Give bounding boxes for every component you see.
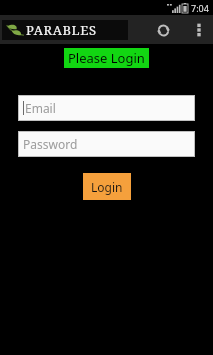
staticText: Please Login [68,49,145,67]
button[interactable]: Refresh [151,18,175,42]
staticText: Login [91,179,123,195]
button[interactable]: Email [18,95,195,121]
staticText: 7:04 [191,2,209,14]
button[interactable]: More options [189,15,209,44]
staticText: Email [25,100,56,116]
staticText: Password [23,136,78,152]
button[interactable]: Password [18,131,195,157]
button[interactable]: Login [83,173,131,200]
staticText: PARABLES [26,21,97,39]
